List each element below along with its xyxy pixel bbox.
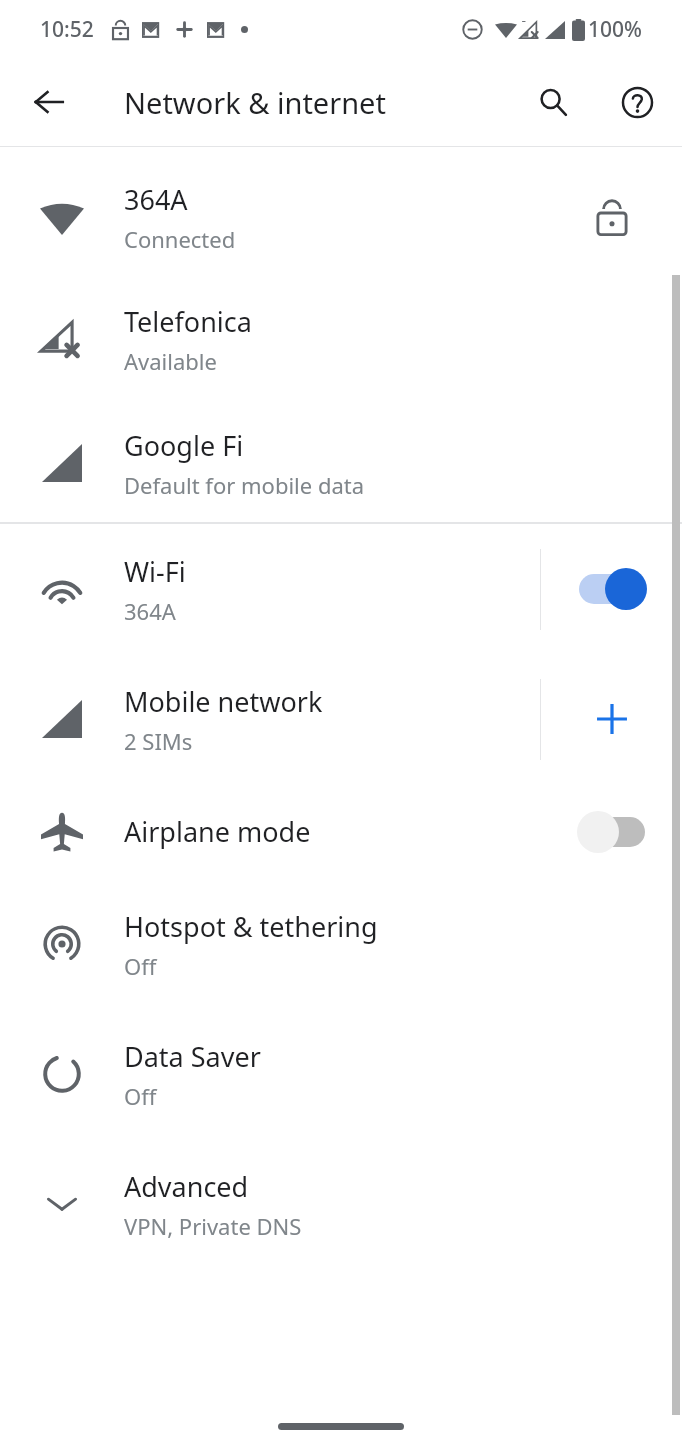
button[interactable]: Search: [524, 73, 582, 131]
button[interactable]: Help: [608, 73, 666, 131]
staticText: Connected: [124, 224, 236, 254]
button[interactable]: Toggle on: [566, 559, 658, 619]
staticText: Google Fi: [124, 427, 244, 464]
button[interactable]: Add SIM: [578, 685, 646, 753]
staticText: Off: [124, 1081, 157, 1111]
staticText: VPN, Private DNS: [124, 1211, 302, 1241]
button[interactable]: Telefonica: [0, 274, 682, 404]
staticText: Off: [124, 951, 157, 981]
staticText: 364A: [124, 181, 188, 218]
button[interactable]: Wi-Fi: [0, 524, 682, 654]
staticText: Mobile network: [124, 683, 323, 720]
button[interactable]: Google Fi: [0, 404, 682, 522]
staticText: Wi-Fi: [124, 553, 186, 590]
button[interactable]: Toggle off: [566, 802, 658, 862]
staticText: Network & internet: [124, 83, 386, 122]
staticText: Hotspot & tethering: [124, 908, 378, 945]
staticText: Advanced: [124, 1168, 249, 1205]
staticText: 2 SIMs: [124, 726, 193, 756]
button[interactable]: Advanced: [0, 1139, 682, 1269]
staticText: Data Saver: [124, 1038, 261, 1075]
staticText: 100%: [588, 15, 642, 44]
staticText: 364A: [124, 596, 176, 626]
button[interactable]: 364A: [0, 161, 682, 274]
button[interactable]: Mobile network: [0, 654, 682, 784]
staticText: Telefonica: [124, 303, 252, 340]
button[interactable]: Back: [20, 73, 78, 131]
button[interactable]: Data Saver: [0, 1009, 682, 1139]
staticText: Default for mobile data: [124, 470, 365, 500]
button[interactable]: Secured network: [584, 190, 640, 246]
staticText: Available: [124, 346, 217, 376]
button[interactable]: Airplane mode: [0, 784, 682, 879]
staticText: 10:52: [40, 15, 94, 44]
staticText: Airplane mode: [124, 813, 311, 850]
button[interactable]: Hotspot & tethering: [0, 879, 682, 1009]
